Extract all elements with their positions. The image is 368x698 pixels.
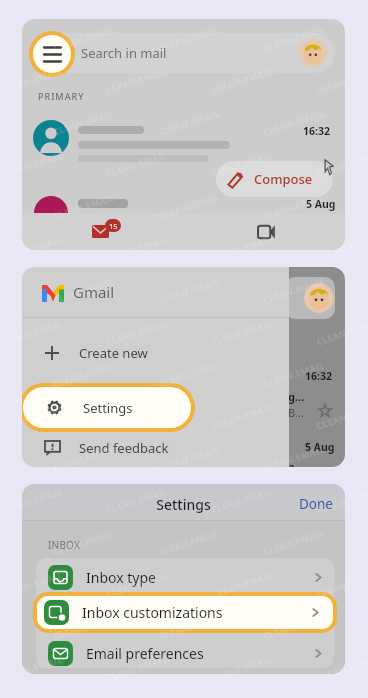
- button[interactable]: Inbox customizations: [33, 592, 337, 633]
- staticText: CLEAN.EMAIL: [52, 442, 116, 474]
- staticText: CLEAN.EMAIL: [157, 22, 221, 54]
- staticText: Settings: [83, 399, 133, 417]
- staticText: CLEAN.EMAIL: [105, 232, 169, 264]
- staticText: CLEAN.EMAIL: [0, 316, 64, 348]
- staticText: CLEAN.EMAIL: [315, 652, 368, 684]
- button[interactable]: Create new: [22, 335, 289, 371]
- button[interactable]: Inbox customizations: [36, 597, 334, 633]
- staticText: CLEAN.EMAIL: [262, 274, 326, 306]
- staticText: Inbox customizations: [82, 603, 223, 622]
- staticText: CLEAN.EMAIL: [157, 442, 221, 474]
- button[interactable]: Meet: [252, 219, 279, 245]
- button[interactable]: Search in mail: [30, 33, 335, 73]
- staticText: Compose: [254, 170, 313, 188]
- staticText: CLEAN.EMAIL: [262, 106, 326, 138]
- staticText: CLEAN.EMAIL: [315, 232, 368, 264]
- button[interactable]: Compose: [216, 161, 333, 197]
- staticText: CLEAN.EMAIL: [105, 568, 169, 600]
- staticText: Create new: [79, 344, 148, 362]
- staticText: CLEAN.EMAIL: [0, 148, 64, 180]
- button[interactable]: Settings: [22, 383, 195, 432]
- staticText: CLEAN.EMAIL: [0, 652, 64, 684]
- staticText: CLEAN.EMAIL: [105, 400, 169, 432]
- staticText: CLEAN.EMAIL: [210, 652, 274, 684]
- staticText: Send feedback: [79, 439, 169, 457]
- staticText: INBOX: [48, 538, 80, 552]
- staticText: CLEAN.EMAIL: [262, 22, 326, 54]
- staticText: CLEAN.EMAIL: [315, 484, 368, 516]
- staticText: CLEAN.EMAIL: [262, 358, 326, 390]
- staticText: CLEAN.EMAIL: [315, 148, 368, 180]
- staticText: CLEAN.EMAIL: [210, 316, 274, 348]
- staticText: CLEAN.EMAIL: [0, 568, 64, 600]
- staticText: CLEAN.EMAIL: [210, 232, 274, 264]
- staticText: CLEAN.EMAIL: [52, 274, 116, 306]
- button[interactable]: Send feedback: [22, 430, 289, 466]
- staticText: CLEAN.EMAIL: [0, 400, 64, 432]
- staticText: 15: [109, 221, 118, 231]
- staticText: CLEAN.EMAIL: [315, 568, 368, 600]
- staticText: CLEAN.EMAIL: [52, 106, 116, 138]
- staticText: Gmail: [73, 282, 115, 302]
- staticText: 16:32: [303, 124, 330, 138]
- staticText: CLEAN.EMAIL: [52, 190, 116, 222]
- staticText: 16:32: [305, 369, 332, 383]
- staticText: Inbox type: [86, 568, 156, 587]
- staticText: CLEAN.EMAIL: [315, 400, 368, 432]
- staticText: CLEAN.EMAIL: [157, 610, 221, 642]
- button[interactable]: Inbox type: [36, 559, 334, 595]
- staticText: CLEAN.EMAIL: [105, 316, 169, 348]
- staticText: CLEAN.EMAIL: [105, 484, 169, 516]
- staticText: CLEAN.EMAIL: [262, 610, 326, 642]
- staticText: B...: [288, 405, 304, 420]
- staticText: CLEAN.EMAIL: [52, 610, 116, 642]
- staticText: Settings: [22, 495, 345, 514]
- staticText: Search in mail: [81, 44, 167, 62]
- staticText: CLEAN.EMAIL: [262, 190, 326, 222]
- button[interactable]: Email preferences: [36, 635, 334, 668]
- staticText: CLEAN.EMAIL: [105, 148, 169, 180]
- staticText: CLEAN.EMAIL: [210, 148, 274, 180]
- staticText: Inbox customizations: [86, 606, 227, 625]
- button[interactable]: Open navigation menu: [29, 31, 75, 77]
- button[interactable]: Mail, 15 unread: [84, 215, 129, 248]
- staticText: CLEAN.EMAIL: [262, 442, 326, 474]
- staticText: Email preferences: [86, 644, 204, 663]
- staticText: Done: [299, 495, 333, 513]
- staticText: CLEAN.EMAIL: [315, 64, 368, 96]
- staticText: 5 Aug: [305, 440, 335, 454]
- staticText: PRIMARY: [38, 90, 85, 102]
- staticText: CLEAN.EMAIL: [0, 64, 64, 96]
- staticText: g...: [288, 389, 305, 404]
- staticText: CLEAN.EMAIL: [0, 232, 64, 264]
- staticText: CLEAN.EMAIL: [52, 526, 116, 558]
- staticText: CLEAN.EMAIL: [210, 568, 274, 600]
